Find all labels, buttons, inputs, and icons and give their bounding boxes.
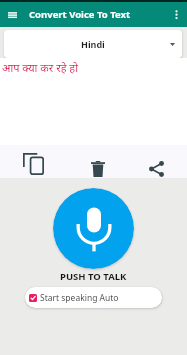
staticText: PUSH TO TALK [60, 270, 127, 283]
button[interactable]: Menu [0, 3, 24, 27]
button[interactable]: Delete [77, 152, 119, 185]
staticText: Hindi [81, 38, 105, 50]
button[interactable]: Hindi [4, 30, 182, 58]
staticText: Start speaking Auto [40, 292, 119, 304]
button[interactable]: Share [135, 152, 177, 185]
button[interactable]: More options [165, 4, 187, 26]
button[interactable]: Copy [12, 147, 54, 180]
button[interactable]: Push to talk [53, 188, 134, 269]
staticText: Convert Voice To Text [29, 8, 131, 21]
button[interactable]: Start speaking Auto [25, 287, 162, 308]
staticText: आप क्या कर रहे हो [2, 60, 79, 75]
